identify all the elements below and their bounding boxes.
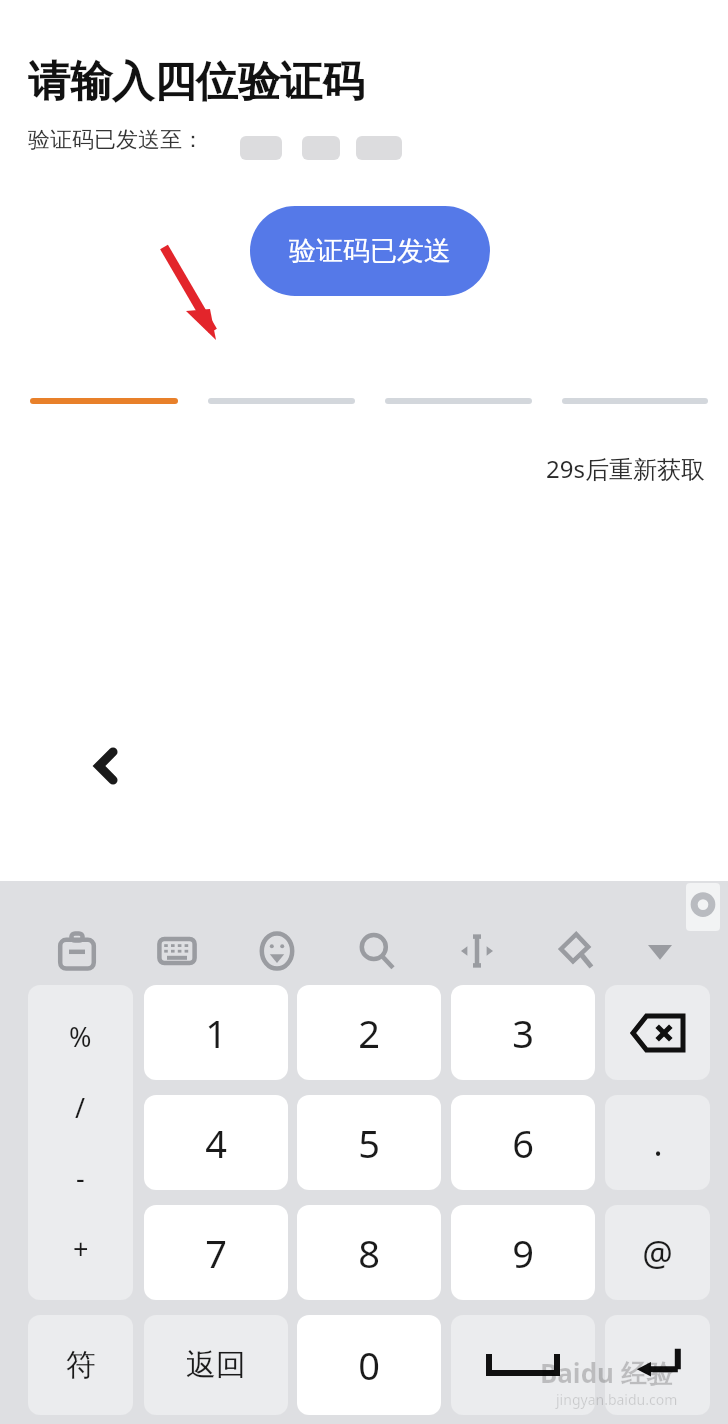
button[interactable]: 6 <box>451 1095 595 1190</box>
staticText: 6 <box>512 1117 534 1169</box>
staticText: 符 <box>66 1346 96 1384</box>
button[interactable]: 5 <box>297 1095 441 1190</box>
staticText: 验证码已发送 <box>289 234 451 268</box>
button[interactable]: 验证码已发送 <box>250 206 490 296</box>
staticText: - <box>76 1159 85 1196</box>
button[interactable] <box>562 398 708 404</box>
staticText: 验证码已发送至： <box>28 126 204 154</box>
staticText: 请输入四位验证码 <box>28 56 364 109</box>
staticText: % <box>69 1018 92 1055</box>
button[interactable]: Search <box>351 925 403 977</box>
button[interactable]: Keyboard settings <box>151 925 203 977</box>
button[interactable]: 7 <box>144 1205 288 1300</box>
button[interactable]: 0 <box>297 1315 441 1415</box>
staticText: 0 <box>358 1339 380 1391</box>
button[interactable]: 4 <box>144 1095 288 1190</box>
staticText: Baidu 经验 <box>540 1355 673 1391</box>
staticText: 5 <box>358 1117 380 1169</box>
button[interactable] <box>451 1315 595 1415</box>
button[interactable]: 1 <box>144 985 288 1080</box>
button[interactable]: Clipboard <box>51 925 103 977</box>
button[interactable]: 2 <box>297 985 441 1080</box>
button[interactable]: Back <box>32 692 180 840</box>
button[interactable]: 返回 <box>144 1315 288 1415</box>
button[interactable]: . <box>605 1095 710 1190</box>
button[interactable]: Emoji <box>251 925 303 977</box>
staticText: 4 <box>205 1117 227 1169</box>
button[interactable]: % <box>28 985 133 1300</box>
button[interactable]: @ <box>605 1205 710 1300</box>
button[interactable]: Hide keyboard <box>634 925 686 977</box>
button[interactable]: Move cursor <box>451 925 503 977</box>
button[interactable] <box>385 398 532 404</box>
button[interactable]: Theme <box>551 925 603 977</box>
staticText: 2 <box>358 1007 380 1059</box>
staticText: 返回 <box>186 1346 246 1384</box>
staticText: . <box>653 1120 663 1166</box>
button[interactable] <box>605 1315 710 1415</box>
button[interactable]: 符 <box>28 1315 133 1415</box>
button[interactable]: 29s后重新获取 <box>546 452 705 485</box>
staticText: / <box>75 1089 86 1126</box>
staticText: + <box>73 1230 89 1267</box>
staticText: 1 <box>205 1007 227 1059</box>
staticText: 8 <box>358 1227 380 1279</box>
staticText: 7 <box>205 1227 227 1279</box>
button[interactable]: 8 <box>297 1205 441 1300</box>
staticText: 3 <box>512 1007 534 1059</box>
button[interactable] <box>605 985 710 1080</box>
button[interactable] <box>30 398 178 404</box>
button[interactable]: 9 <box>451 1205 595 1300</box>
staticText: @ <box>642 1230 673 1276</box>
button[interactable]: 3 <box>451 985 595 1080</box>
button[interactable] <box>208 398 355 404</box>
staticText: jingyan.baidu.com <box>556 1390 678 1409</box>
staticText: 9 <box>512 1227 534 1279</box>
